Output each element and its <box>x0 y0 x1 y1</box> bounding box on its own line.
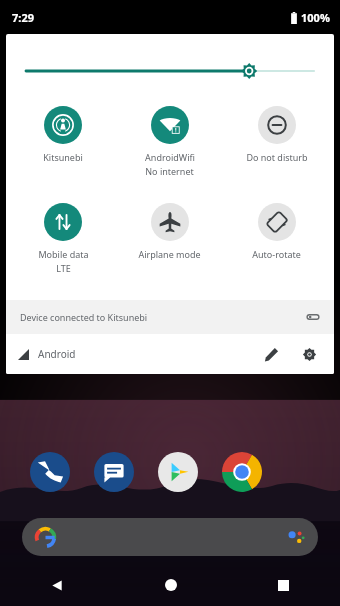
staticText: Airplane mode <box>138 248 201 260</box>
button[interactable]: Chrome <box>220 450 264 494</box>
staticText: AndroidWifi <box>145 151 195 163</box>
staticText: Android <box>38 347 76 361</box>
button[interactable]: AndroidWifi <box>116 104 223 179</box>
button[interactable]: Auto-rotate <box>223 201 330 262</box>
button[interactable]: Edit <box>258 341 284 367</box>
staticText: No internet <box>145 165 194 177</box>
button[interactable]: Mobile data <box>10 201 116 276</box>
button[interactable]: Device connected to Kitsunebi <box>6 300 334 334</box>
button[interactable]: Recents <box>227 570 340 600</box>
staticText: Do not disturb <box>246 151 308 163</box>
staticText: 100% <box>301 10 330 25</box>
button[interactable]: Settings <box>296 341 322 367</box>
button[interactable]: Airplane mode <box>116 201 223 262</box>
button[interactable]: Back <box>0 570 114 600</box>
staticText: 7:29 <box>12 10 34 25</box>
staticText: LTE <box>56 262 71 274</box>
staticText: Mobile data <box>38 248 89 260</box>
button[interactable]: Do not disturb <box>223 104 330 165</box>
button[interactable] <box>22 518 318 556</box>
button[interactable]: Messages <box>92 450 136 494</box>
button[interactable]: Kitsunebi <box>10 104 116 165</box>
staticText: Auto-rotate <box>252 248 301 260</box>
staticText: Kitsunebi <box>43 151 83 163</box>
button[interactable]: Brightness <box>26 60 314 82</box>
button[interactable]: Phone <box>28 450 72 494</box>
staticText: Device connected to Kitsunebi <box>20 311 306 323</box>
button[interactable]: Android <box>18 347 76 361</box>
button[interactable]: Play Store <box>156 450 200 494</box>
button[interactable]: Home <box>114 570 227 600</box>
